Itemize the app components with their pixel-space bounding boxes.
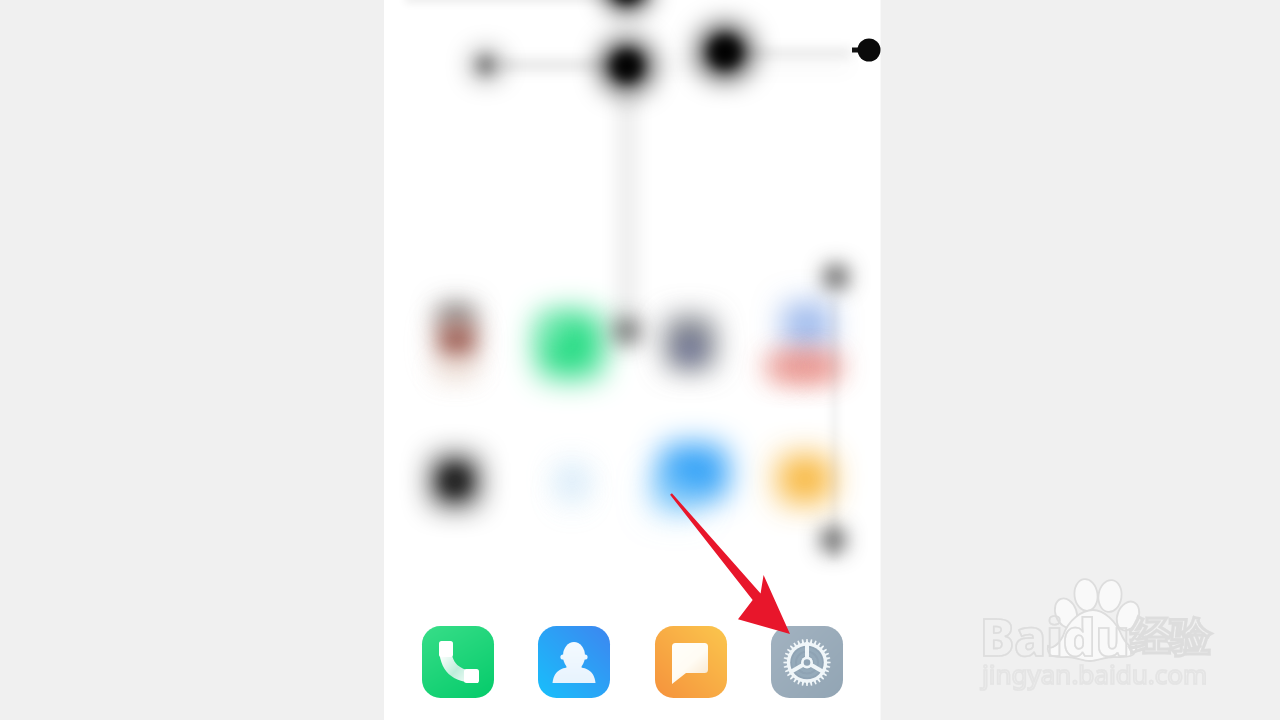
button[interactable]: Messages [655, 626, 727, 698]
staticText: 经验 [1130, 612, 1210, 662]
staticText: Baidu [980, 601, 1130, 670]
button[interactable]: Settings [771, 626, 843, 698]
staticText: jingyan.baidu.com [982, 656, 1208, 691]
button[interactable]: Contacts [538, 626, 610, 698]
button[interactable]: Phone [422, 626, 494, 698]
